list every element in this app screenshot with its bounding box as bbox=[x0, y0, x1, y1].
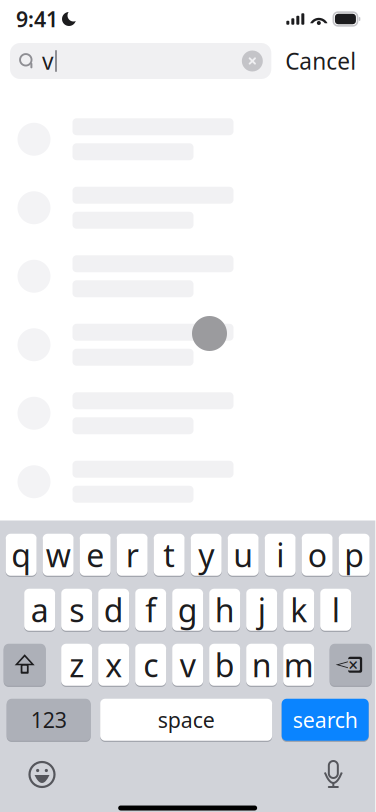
staticText: n bbox=[252, 643, 272, 686]
button[interactable]: y bbox=[191, 533, 222, 576]
button[interactable]: Cancel bbox=[271, 43, 370, 79]
staticText: j bbox=[258, 588, 266, 631]
button[interactable]: w bbox=[43, 533, 74, 576]
button[interactable]: m bbox=[283, 643, 314, 686]
button[interactable]: x bbox=[98, 643, 129, 686]
staticText: r bbox=[126, 533, 139, 576]
button[interactable]: s bbox=[61, 588, 92, 631]
staticText: q bbox=[11, 533, 31, 576]
button[interactable]: n bbox=[246, 643, 277, 686]
staticText: k bbox=[290, 588, 307, 631]
button[interactable]: search bbox=[282, 698, 369, 741]
staticText: g bbox=[178, 588, 198, 631]
staticText: e bbox=[86, 533, 104, 576]
staticText: y bbox=[198, 533, 214, 576]
staticText: 9:41 bbox=[16, 5, 58, 33]
staticText: × bbox=[348, 653, 358, 676]
staticText: 123 bbox=[31, 706, 67, 734]
button[interactable]: z bbox=[61, 643, 92, 686]
staticText: d bbox=[104, 588, 124, 631]
button[interactable]: j bbox=[246, 588, 277, 631]
button[interactable]: u bbox=[228, 533, 259, 576]
staticText: m bbox=[284, 643, 314, 686]
staticText: search bbox=[293, 706, 358, 734]
button[interactable]: f bbox=[135, 588, 166, 631]
staticText: o bbox=[308, 533, 327, 576]
button[interactable]: t bbox=[154, 533, 185, 576]
button[interactable]: g bbox=[172, 588, 203, 631]
staticText: u bbox=[233, 533, 253, 576]
button[interactable]: h bbox=[209, 588, 240, 631]
button[interactable]: a bbox=[24, 588, 55, 631]
staticText: w bbox=[46, 533, 71, 576]
staticText: f bbox=[145, 588, 156, 631]
button[interactable]: l bbox=[320, 588, 351, 631]
button[interactable]: o bbox=[302, 533, 333, 576]
staticText: space bbox=[158, 706, 215, 734]
staticText: v bbox=[180, 643, 196, 686]
button[interactable]: q bbox=[6, 533, 37, 576]
staticText: x bbox=[105, 643, 122, 686]
staticText: v bbox=[42, 46, 54, 76]
staticText: i bbox=[276, 533, 284, 576]
staticText: t bbox=[163, 533, 175, 576]
staticText: h bbox=[215, 588, 235, 631]
button[interactable]: 123 bbox=[7, 698, 91, 741]
staticText: c bbox=[143, 643, 158, 686]
staticText: l bbox=[332, 588, 340, 631]
staticText: p bbox=[344, 533, 364, 576]
button[interactable]: Shift bbox=[4, 643, 46, 686]
staticText: Cancel bbox=[285, 46, 356, 76]
button[interactable]: d bbox=[98, 588, 129, 631]
staticText: b bbox=[215, 643, 235, 686]
button[interactable]: Delete bbox=[330, 643, 372, 686]
button[interactable]: v bbox=[172, 643, 203, 686]
staticText: z bbox=[69, 643, 84, 686]
button[interactable]: k bbox=[283, 588, 314, 631]
button[interactable]: r bbox=[117, 533, 148, 576]
button[interactable]: space bbox=[100, 698, 272, 741]
button[interactable]: b bbox=[209, 643, 240, 686]
button[interactable]: c bbox=[135, 643, 166, 686]
staticText: a bbox=[31, 588, 49, 631]
button[interactable]: e bbox=[80, 533, 111, 576]
button[interactable]: Clear text bbox=[235, 44, 269, 78]
button[interactable]: i bbox=[265, 533, 296, 576]
button[interactable]: Dictation bbox=[306, 751, 360, 797]
staticText: s bbox=[69, 588, 84, 631]
button[interactable]: Emoji keyboard bbox=[15, 751, 69, 797]
button[interactable]: p bbox=[339, 533, 370, 576]
